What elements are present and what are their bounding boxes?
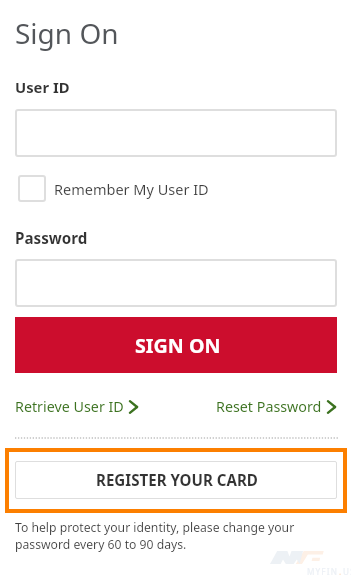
button[interactable]: SIGN ON [15, 317, 337, 373]
button[interactable]: Retrieve User ID [15, 397, 138, 416]
button[interactable]: Remember My User ID [18, 175, 209, 202]
staticText: SIGN ON [135, 332, 221, 359]
staticText: . [339, 566, 343, 576]
staticText: MYFIN [307, 566, 339, 576]
staticText: US [343, 566, 351, 576]
staticText: Remember My User ID [54, 179, 209, 199]
staticText: REGISTER YOUR CARD [96, 470, 258, 491]
button[interactable]: Password input field [15, 259, 337, 307]
staticText: Sign On [15, 14, 119, 52]
button[interactable]: REGISTER YOUR CARD [5, 448, 347, 513]
button[interactable]: Reset Password [216, 397, 336, 416]
staticText: Password [15, 228, 88, 249]
staticText: password every 60 to 90 days. [15, 536, 187, 553]
button[interactable]: User ID input field [15, 109, 337, 157]
staticText: To help protect your identity, please ch… [15, 519, 295, 536]
staticText: Retrieve User ID [15, 397, 124, 416]
staticText: Reset Password [216, 397, 322, 416]
staticText: User ID [15, 77, 70, 97]
